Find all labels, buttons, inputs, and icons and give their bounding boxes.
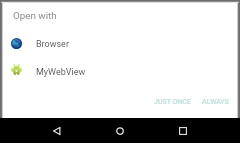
staticText: MyWebView	[36, 67, 86, 78]
button[interactable]: Back	[48, 122, 66, 140]
staticText: Open with	[13, 10, 57, 21]
button[interactable]: ALWAYS	[200, 95, 231, 109]
button[interactable]: MyWebView	[0, 59, 240, 79]
staticText: JUST ONCE	[154, 98, 191, 106]
button[interactable]: Home	[111, 122, 129, 140]
staticText: ALWAYS	[202, 98, 229, 106]
button[interactable]: JUST ONCE	[152, 95, 193, 109]
button[interactable]: Browser	[0, 33, 240, 53]
staticText: Browser	[36, 39, 69, 50]
button[interactable]: Recent apps	[174, 122, 192, 140]
